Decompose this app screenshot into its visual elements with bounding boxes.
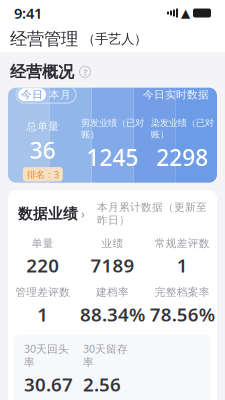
staticText: 染发业绩（已对账）: [151, 117, 214, 140]
staticText: 220: [26, 253, 59, 278]
staticText: 本月: [49, 88, 71, 101]
staticText: 今日: [21, 88, 43, 101]
staticText: 常规差评数: [155, 237, 210, 250]
button[interactable]: 今日: [18, 88, 46, 101]
button[interactable]: 数据业绩: [8, 191, 217, 229]
staticText: 2.56%: [83, 372, 121, 400]
staticText: 业绩: [101, 237, 123, 250]
staticText: 36: [30, 135, 56, 165]
staticText: ?: [83, 66, 87, 78]
staticText: 排名：3: [27, 168, 59, 180]
staticText: 2298: [156, 142, 208, 172]
staticText: 管理差评数: [15, 286, 70, 299]
staticText: 88.34%: [80, 302, 145, 327]
staticText: 1: [177, 253, 188, 278]
staticText: ›: [78, 206, 85, 222]
staticText: 剪发业绩（已对账）: [81, 117, 144, 140]
staticText: ▲: [181, 6, 190, 20]
staticText: 7189: [90, 253, 134, 278]
staticText: 30天留存率: [83, 342, 128, 369]
staticText: 9:41: [14, 3, 42, 23]
staticText: 完整档案率: [155, 286, 210, 299]
staticText: 单量: [32, 237, 54, 250]
staticText: 30天回头率: [24, 342, 69, 369]
button[interactable]: 本月: [46, 88, 74, 101]
staticText: 1: [37, 302, 48, 327]
staticText: （手艺人）: [78, 31, 147, 47]
staticText: 建档率: [96, 286, 129, 299]
staticText: 数据业绩: [18, 205, 78, 223]
button[interactable]: 帮助说明: [78, 65, 92, 79]
staticText: 经营概况: [10, 62, 74, 82]
staticText: 今日实时数据: [143, 88, 209, 101]
staticText: 经营管理: [10, 28, 78, 50]
staticText: 总单量: [26, 120, 59, 133]
staticText: 本月累计数据（更新至昨日）: [97, 201, 207, 227]
staticText: 1245: [86, 142, 138, 172]
staticText: 78.56%: [150, 302, 215, 327]
staticText: 30.67%: [24, 372, 73, 400]
